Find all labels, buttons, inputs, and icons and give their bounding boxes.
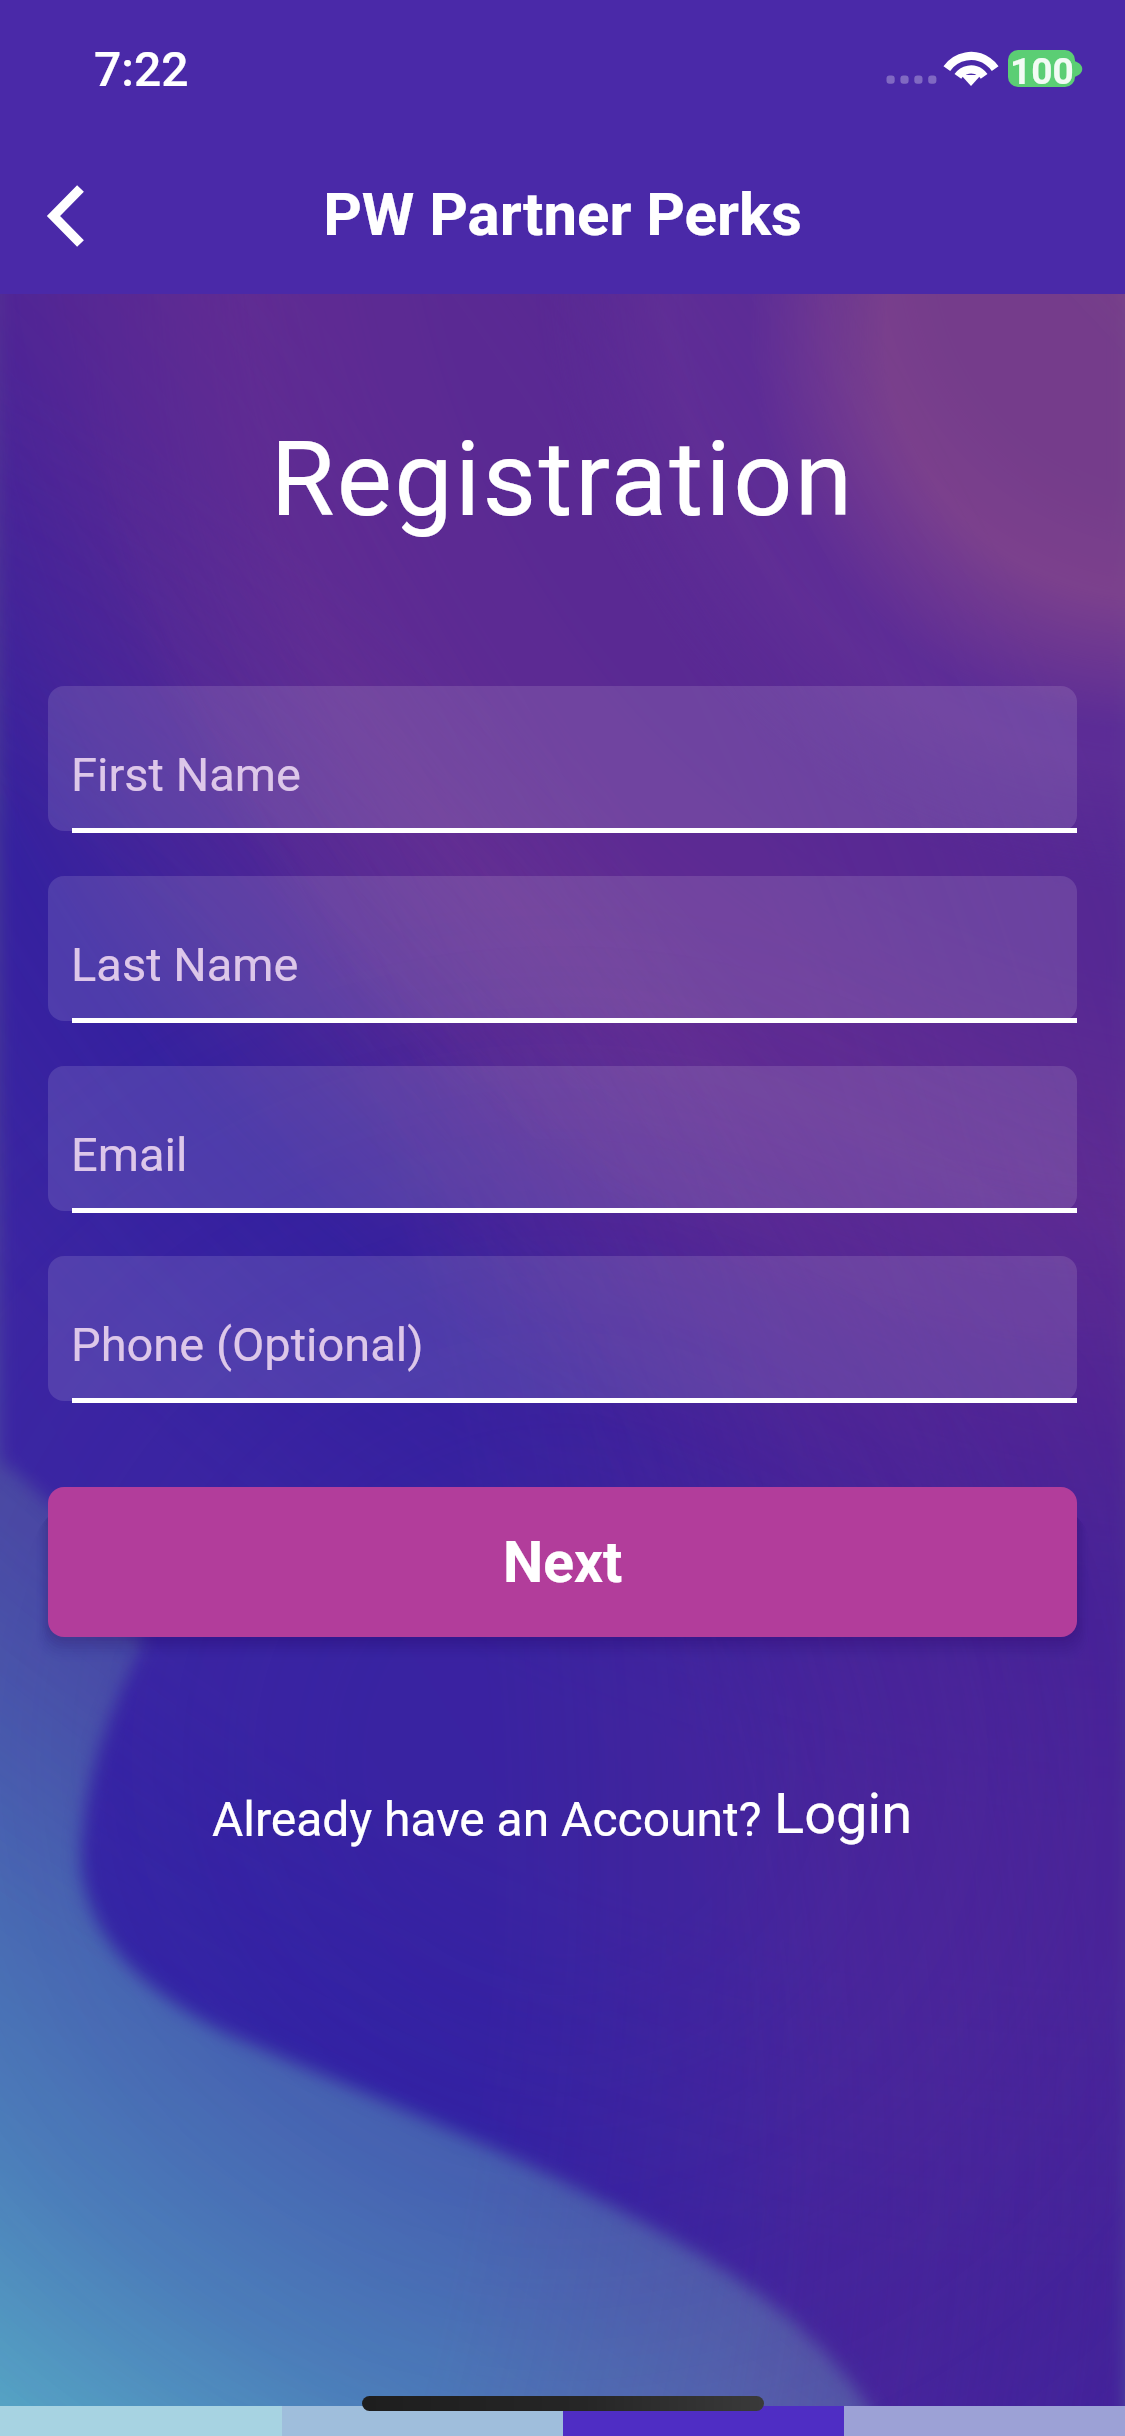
staticText: Registration xyxy=(0,419,1125,541)
button[interactable] xyxy=(48,1066,1077,1211)
staticText: Already have an Account? xyxy=(212,1791,774,1847)
staticText: First Name xyxy=(71,747,301,802)
button[interactable]: Next xyxy=(48,1487,1077,1637)
staticText: Phone (Optional) xyxy=(71,1317,424,1372)
button[interactable] xyxy=(48,686,1077,831)
button[interactable] xyxy=(48,1256,1077,1401)
button[interactable] xyxy=(48,876,1077,1021)
staticText: Last Name xyxy=(71,937,299,992)
button[interactable]: Back xyxy=(12,161,122,271)
staticText: PW Partner Perks xyxy=(0,179,1125,249)
staticText: Email xyxy=(71,1127,188,1182)
staticText: Next xyxy=(503,1529,623,1596)
staticText: 7:22 xyxy=(94,41,189,97)
staticText: Login xyxy=(774,1781,913,1847)
staticText: 100 xyxy=(1010,50,1074,93)
button[interactable]: Already have an Account? xyxy=(0,1781,1125,1847)
